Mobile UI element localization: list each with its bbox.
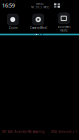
staticText: 16:59 (2, 2, 15, 9)
staticText: DSP Start: Auxiliary DSB-Sampling (1, 130, 44, 133)
button[interactable]: Automatic mode (51, 10, 76, 32)
button[interactable]: Zoom (0, 11, 25, 31)
staticText: DBS2 Surround 2.1 (50, 130, 77, 133)
staticText: STEREO (35, 2, 43, 5)
staticText: Zoom (9, 26, 17, 30)
staticText: Camera Wind (30, 26, 47, 30)
staticText: FM 98.5 MHz (30, 5, 48, 9)
button[interactable]: Camera Wind (25, 11, 51, 31)
staticText: Automatic mode (57, 25, 70, 32)
